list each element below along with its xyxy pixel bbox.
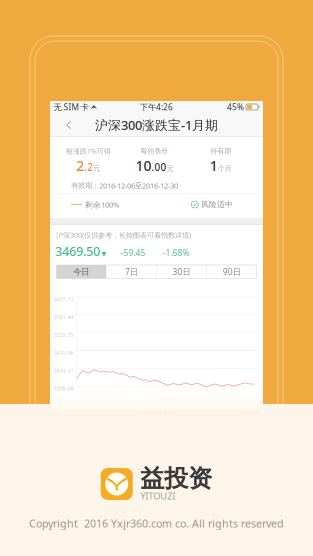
staticText: 3637.13 [53, 295, 73, 303]
staticText: 10 [135, 156, 151, 175]
staticText: 个月 [218, 164, 232, 173]
staticText: YITOUZI [140, 489, 175, 502]
staticText: -59.45 [120, 247, 145, 258]
staticText: 今日 [73, 266, 89, 277]
staticText: 3581.44 [53, 313, 73, 321]
staticText: 无 SIM 卡 [53, 101, 88, 113]
staticText: 2016-12-06至2016-12-30 [99, 180, 178, 191]
staticText: 3525.75 [53, 331, 73, 339]
staticText: 1 [210, 156, 218, 175]
button[interactable]: 今日 [56, 265, 106, 278]
staticText: 7日 [125, 266, 138, 277]
staticText: 元 [166, 164, 173, 173]
staticText: 下午4:26 [140, 101, 173, 113]
staticText: .2 [84, 160, 93, 174]
staticText: 30日 [173, 266, 191, 277]
button[interactable]: 返回 [50, 113, 84, 137]
staticText: 3414.37 [53, 367, 73, 374]
staticText: 每份售价 [140, 146, 168, 156]
staticText: 有效期： [71, 181, 99, 190]
button[interactable]: 30日 [157, 265, 206, 278]
staticText: 每涨跌1%可得 [66, 146, 111, 156]
staticText: 益投资 [140, 463, 212, 494]
staticText: 剩余100% [85, 199, 119, 210]
staticText: 风险适中 [201, 200, 233, 209]
staticText: 沪深300涨跌宝-1月期 [95, 116, 218, 134]
staticText: Copyright 2016 Yxjr360.com co. All right… [29, 516, 284, 530]
staticText: 2 [76, 156, 84, 175]
staticText: 90日 [223, 266, 241, 277]
staticText: 3358.68 [53, 384, 73, 392]
staticText: 3470.06 [53, 349, 73, 356]
button[interactable]: 90日 [207, 265, 256, 278]
staticText: 持有期 [210, 146, 231, 156]
staticText: ▼ [101, 250, 106, 257]
button[interactable]: 7日 [107, 265, 156, 278]
staticText: 45% [227, 101, 244, 113]
staticText: 沪深300(仅供参考，长按图表可看指数详情) [56, 230, 191, 240]
staticText: 元 [93, 164, 100, 173]
staticText: .00 [151, 160, 166, 174]
staticText: -1.68% [162, 247, 189, 258]
staticText: 3469.50 [55, 242, 100, 260]
